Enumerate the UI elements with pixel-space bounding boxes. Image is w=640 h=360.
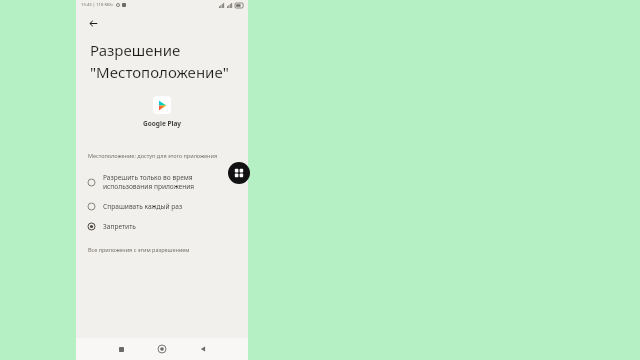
staticText: "Местоположение" (90, 62, 229, 82)
staticText: Разрешение (90, 40, 181, 60)
button[interactable]: Back (84, 14, 102, 32)
staticText: использования приложения (103, 182, 195, 191)
staticText: Google Play (143, 119, 182, 128)
button[interactable]: Запретить (76, 216, 248, 236)
button[interactable]: Back (196, 342, 210, 356)
button[interactable]: Assistant overlay (228, 162, 250, 184)
staticText: Спрашивать каждый раз (103, 202, 183, 211)
staticText: Разрешить только во время (103, 173, 193, 182)
button[interactable]: Recent apps (114, 342, 128, 356)
staticText: Запретить (103, 222, 136, 231)
staticText: 15:43 | 118 KB/c (81, 2, 114, 8)
button[interactable]: Разрешить только во время (76, 168, 248, 196)
staticText: Местоположение: доступ для этого приложе… (88, 152, 218, 159)
button[interactable]: Home (155, 342, 169, 356)
button[interactable]: Спрашивать каждый раз (76, 196, 248, 216)
staticText: Все приложения с этим разрешением (88, 246, 190, 253)
